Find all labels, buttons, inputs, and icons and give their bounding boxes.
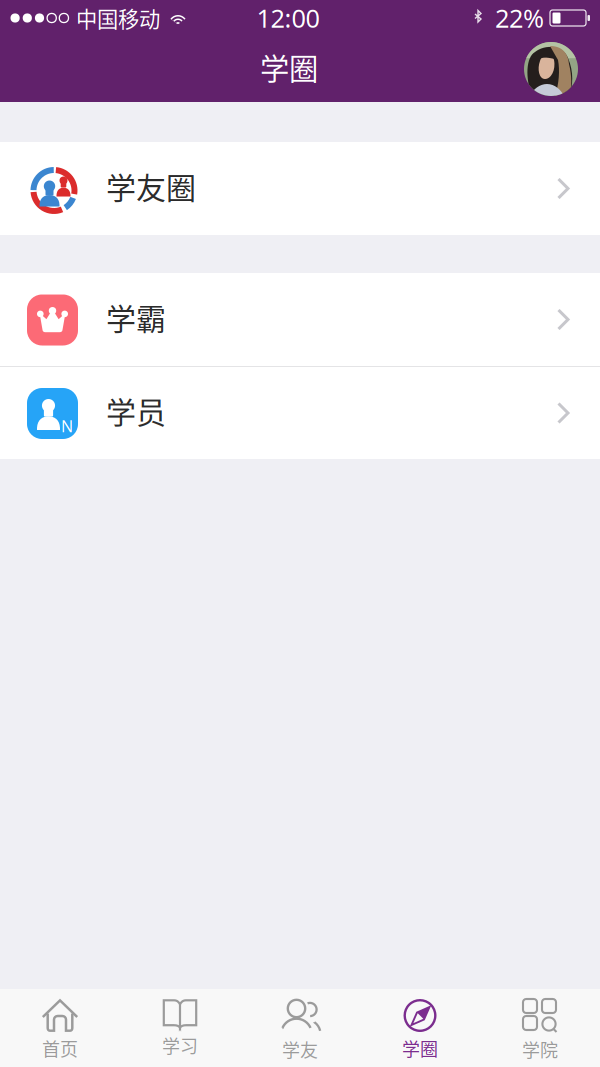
staticText: 学员 (106, 389, 166, 432)
button[interactable]: 学圈 (360, 989, 480, 1067)
staticText: 学习 (162, 1032, 198, 1058)
button[interactable]: 学友圈 (0, 142, 600, 235)
staticText: 首页 (42, 1035, 78, 1061)
staticText: 学友圈 (106, 164, 196, 208)
button[interactable]: 学院 (480, 989, 600, 1067)
staticText: 学友 (282, 1036, 318, 1062)
staticText: 学圈 (402, 1035, 438, 1061)
staticText: N (61, 415, 73, 437)
staticText: 学霸 (106, 295, 166, 339)
staticText: 学院 (522, 1036, 558, 1062)
staticText: 中国移动 (76, 3, 160, 33)
button[interactable]: N (0, 367, 600, 459)
button[interactable]: 首页 (0, 989, 120, 1067)
staticText: 12:00 (256, 1, 319, 35)
button[interactable]: 学友 (240, 989, 360, 1067)
button[interactable]: 学习 (120, 989, 240, 1067)
staticText: 22% (495, 1, 544, 35)
staticText: 学圈 (260, 46, 318, 88)
button[interactable]: 学霸 (0, 273, 600, 366)
button[interactable]: Profile (524, 42, 578, 96)
